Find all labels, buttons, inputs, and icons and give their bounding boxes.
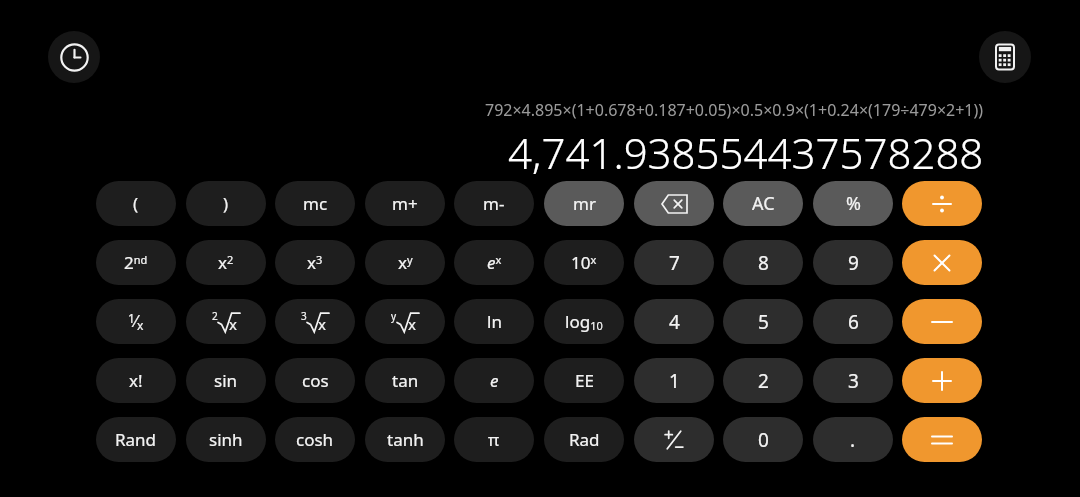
button[interactable]: xy (365, 240, 445, 285)
button[interactable]: Rad (544, 417, 624, 462)
staticText: m- (483, 192, 505, 215)
button[interactable]: 10x (544, 240, 624, 285)
button[interactable]: 2 (723, 358, 803, 403)
button[interactable]: Backspace (634, 181, 714, 226)
staticText: 5 (758, 309, 769, 335)
staticText: mc (303, 192, 328, 215)
staticText: 792×4.895×(1+0.678+0.187+0.05)×0.5×0.9×(… (485, 99, 984, 121)
button[interactable]: sinh (186, 417, 266, 462)
button[interactable]: Multiply (902, 240, 982, 285)
staticText: 8 (758, 250, 769, 276)
button[interactable]: m+ (365, 181, 445, 226)
button[interactable]: 2 (186, 299, 266, 344)
button[interactable]: 0 (723, 417, 803, 462)
staticText: 7 (669, 250, 680, 276)
staticText: log10 (565, 310, 603, 334)
button[interactable]: Plus (902, 358, 982, 403)
staticText: sin (214, 369, 238, 392)
staticText: Rand (115, 428, 157, 451)
button[interactable]: mr (544, 181, 624, 226)
button[interactable]: cos (275, 358, 355, 403)
staticText: 0 (758, 427, 769, 453)
button[interactable]: π (454, 417, 534, 462)
staticText: ) (223, 192, 229, 215)
button[interactable]: tan (365, 358, 445, 403)
button[interactable]: 9 (813, 240, 893, 285)
button[interactable]: 5 (723, 299, 803, 344)
button[interactable]: Divide (902, 181, 982, 226)
button[interactable]: Minus (902, 299, 982, 344)
button[interactable]: . (813, 417, 893, 462)
button[interactable]: m- (454, 181, 534, 226)
button[interactable]: ( (96, 181, 176, 226)
button[interactable]: Plus minus (634, 417, 714, 462)
staticText: 3 (848, 368, 859, 394)
button[interactable]: 3 (275, 299, 355, 344)
staticText: y (391, 309, 397, 323)
staticText: ex (487, 251, 502, 274)
button[interactable]: 7 (634, 240, 714, 285)
staticText: . (850, 427, 856, 453)
button[interactable]: tanh (365, 417, 445, 462)
staticText: 1 (669, 368, 680, 394)
button[interactable]: Rand (96, 417, 176, 462)
button[interactable]: x2 (186, 240, 266, 285)
staticText: 10x (571, 251, 597, 274)
staticText: tan (392, 369, 419, 392)
staticText: x3 (307, 251, 323, 274)
staticText: tanh (387, 428, 424, 451)
button[interactable]: x3 (275, 240, 355, 285)
button[interactable]: 3 (813, 358, 893, 403)
button[interactable]: y (365, 299, 445, 344)
staticText: 6 (848, 309, 859, 335)
button[interactable]: History (48, 31, 100, 83)
button[interactable]: Equals (902, 417, 982, 462)
staticText: mr (573, 192, 596, 215)
staticText: e (490, 369, 499, 392)
button[interactable]: ex (454, 240, 534, 285)
staticText: 2nd (124, 251, 148, 274)
staticText: sinh (209, 428, 243, 451)
button[interactable]: mc (275, 181, 355, 226)
staticText: 2 (758, 368, 769, 394)
staticText: ( (133, 192, 139, 215)
staticText: xy (398, 251, 413, 274)
staticText: m+ (392, 192, 418, 215)
button[interactable]: e (454, 358, 534, 403)
button[interactable]: 6 (813, 299, 893, 344)
staticText: 4,741.938554437578288 (508, 124, 984, 181)
staticText: % (846, 191, 861, 216)
button[interactable]: log10 (544, 299, 624, 344)
button[interactable]: EE (544, 358, 624, 403)
button[interactable]: sin (186, 358, 266, 403)
staticText: AC (752, 191, 775, 216)
button[interactable]: 1 (634, 358, 714, 403)
button[interactable]: 1⁄x (96, 299, 176, 344)
staticText: 2 (212, 309, 218, 323)
staticText: 3 (301, 309, 307, 323)
staticText: x (408, 314, 416, 334)
staticText: EE (575, 369, 594, 392)
staticText: 4 (669, 309, 680, 335)
staticText: x2 (218, 251, 234, 274)
button[interactable]: % (813, 181, 893, 226)
button[interactable]: Calculator mode (979, 31, 1031, 83)
button[interactable]: 2nd (96, 240, 176, 285)
staticText: x (229, 314, 237, 334)
staticText: ln (487, 310, 502, 333)
staticText: cosh (296, 428, 334, 451)
staticText: x! (129, 369, 143, 392)
button[interactable]: x! (96, 358, 176, 403)
staticText: x (318, 314, 326, 334)
button[interactable]: 4 (634, 299, 714, 344)
button[interactable]: ) (186, 181, 266, 226)
staticText: π (488, 428, 500, 451)
button[interactable]: cosh (275, 417, 355, 462)
staticText: Rad (569, 428, 600, 451)
button[interactable]: ln (454, 299, 534, 344)
button[interactable]: AC (723, 181, 803, 226)
button[interactable]: 8 (723, 240, 803, 285)
staticText: cos (302, 369, 329, 392)
staticText: 9 (848, 250, 859, 276)
staticText: 1⁄x (128, 310, 144, 333)
